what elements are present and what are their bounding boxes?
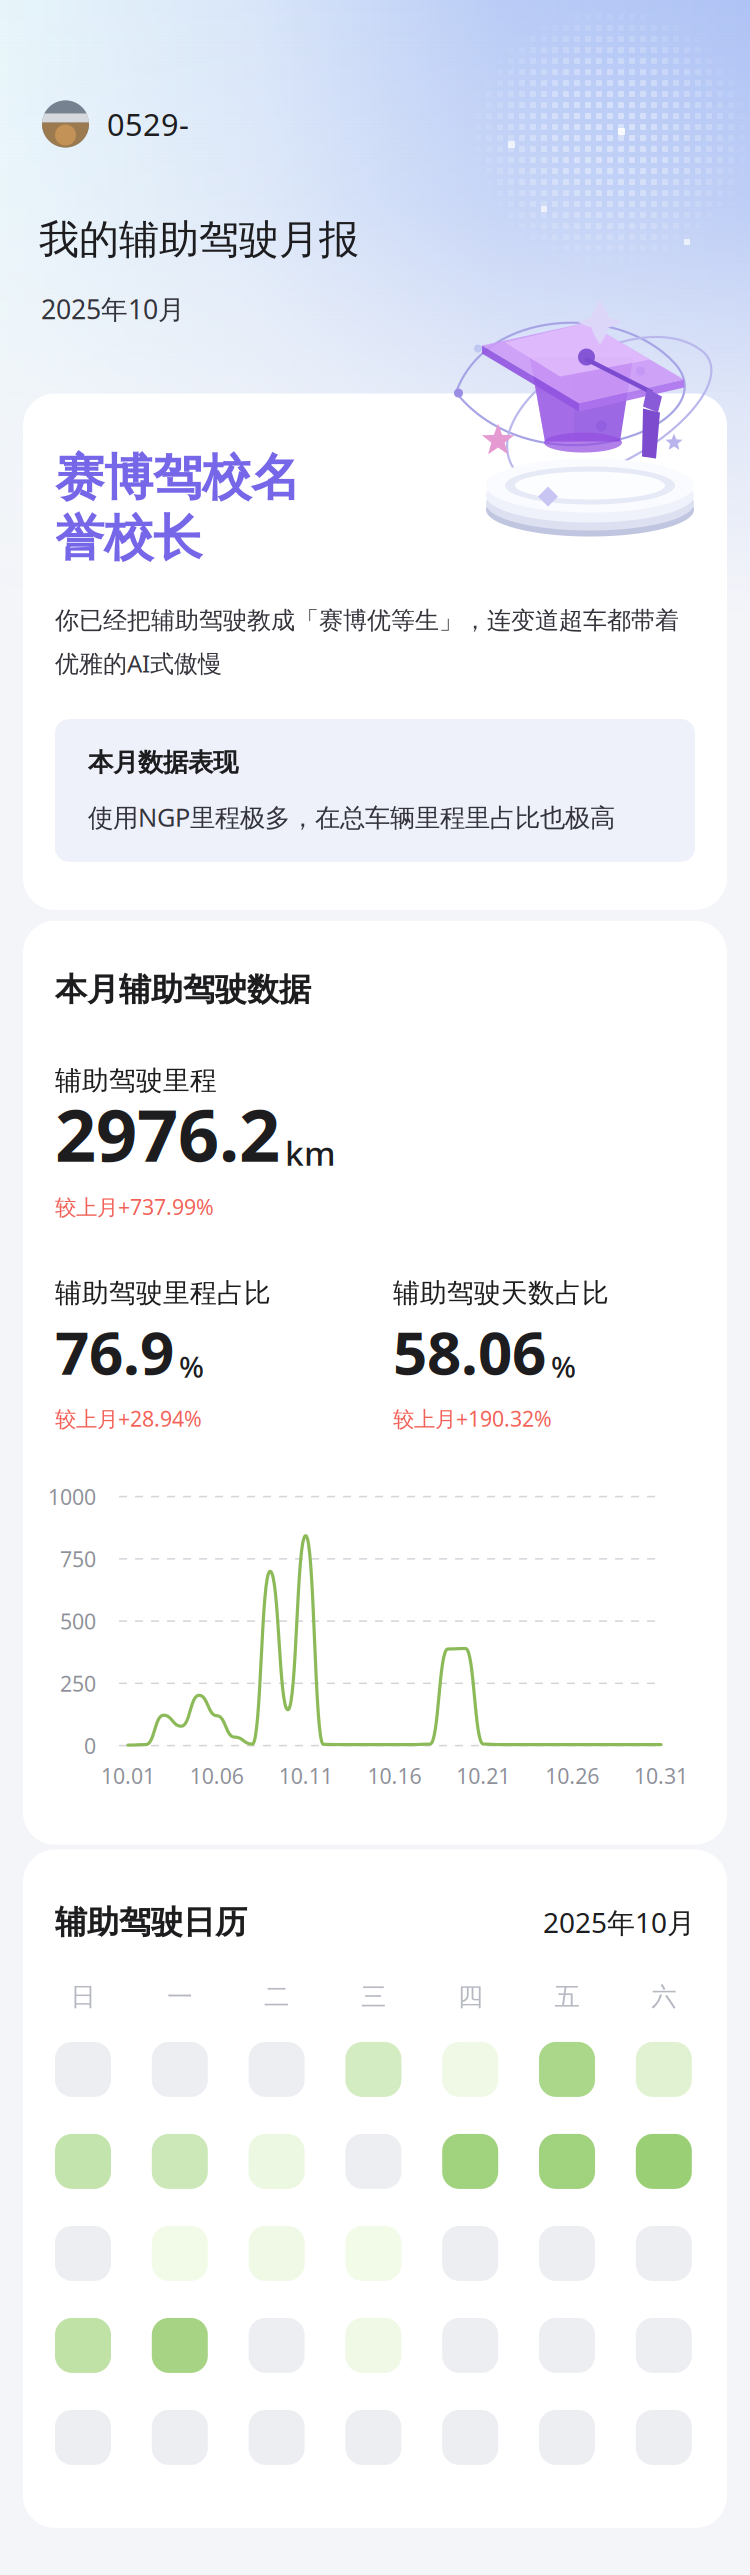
staticText: 0 xyxy=(84,1731,96,1760)
staticText: 10.21 xyxy=(456,1761,510,1790)
staticText: 本月辅助驾驶数据 xyxy=(55,970,311,1009)
staticText: km xyxy=(285,1131,336,1175)
staticText: 六 xyxy=(651,1981,676,2012)
staticText: 辅助驾驶里程 xyxy=(55,1064,217,1097)
staticText: 一 xyxy=(167,1981,192,2012)
staticText: % xyxy=(551,1347,576,1386)
staticText: 较上月+28.94% xyxy=(55,1404,202,1433)
staticText: 2025年10月 xyxy=(543,1904,695,1941)
staticText: 五 xyxy=(554,1981,579,2012)
staticText: 10.26 xyxy=(545,1761,599,1790)
staticText: 10.11 xyxy=(279,1761,333,1790)
staticText: 本月数据表现 xyxy=(88,747,238,778)
staticText: 750 xyxy=(60,1545,96,1573)
staticText: 较上月+190.32% xyxy=(393,1404,552,1433)
staticText: 250 xyxy=(60,1669,96,1697)
staticText: 10.01 xyxy=(101,1761,155,1790)
button[interactable]: 0529- xyxy=(0,99,342,149)
staticText: 使用NGP里程极多，在总车辆里程里占比也极高 xyxy=(88,800,615,834)
staticText: 四 xyxy=(458,1981,483,2012)
staticText: 你已经把辅助驾驶教成「赛博优等生」，连变道超车都带着优雅的AI式傲慢 xyxy=(55,606,679,679)
staticText: 我的辅助驾驶月报 xyxy=(39,215,359,264)
staticText: 500 xyxy=(60,1607,96,1635)
staticText: 2025年10月 xyxy=(41,291,185,326)
staticText: 三 xyxy=(361,1981,386,2012)
staticText: 76.9 xyxy=(55,1312,174,1391)
staticText: 1000 xyxy=(48,1482,96,1511)
staticText: 二 xyxy=(264,1981,289,2012)
staticText: 2976.2 xyxy=(55,1086,280,1181)
staticText: 10.16 xyxy=(367,1761,421,1790)
staticText: 辅助驾驶天数占比 xyxy=(393,1277,609,1310)
staticText: % xyxy=(179,1347,204,1386)
staticText: 10.31 xyxy=(634,1761,688,1790)
staticText: 10.06 xyxy=(190,1761,244,1790)
staticText: 58.06 xyxy=(393,1312,546,1391)
staticText: 赛博驾校名 誉校长 xyxy=(55,447,300,569)
staticText: 辅助驾驶日历 xyxy=(55,1903,247,1942)
staticText: 辅助驾驶里程占比 xyxy=(55,1277,271,1310)
staticText: 较上月+737.99% xyxy=(55,1192,214,1221)
staticText: 0529- xyxy=(107,104,189,144)
staticText: 日 xyxy=(70,1981,95,2012)
